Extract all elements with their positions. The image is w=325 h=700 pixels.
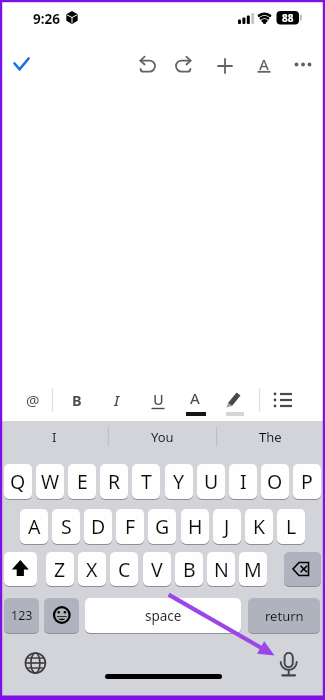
button[interactable]: U	[146, 387, 170, 411]
button[interactable]	[132, 52, 160, 78]
button[interactable]: V	[143, 552, 171, 586]
button[interactable]: W	[36, 464, 64, 499]
button[interactable]: space	[85, 598, 241, 633]
staticText: P	[301, 468, 313, 495]
button[interactable]	[44, 598, 79, 633]
button[interactable]	[4, 552, 37, 586]
staticText: 88	[282, 11, 294, 25]
staticText: return	[265, 607, 304, 625]
button[interactable]: Z	[46, 552, 74, 586]
staticText: I	[114, 390, 120, 410]
button[interactable]: F	[116, 509, 144, 544]
button[interactable]: A	[183, 386, 207, 410]
staticText: J	[224, 513, 230, 540]
button[interactable]: E	[68, 464, 96, 499]
button[interactable]: G	[148, 509, 176, 544]
staticText: X	[86, 556, 98, 583]
button[interactable]: B	[175, 552, 203, 586]
button[interactable]	[8, 52, 36, 78]
staticText: W	[41, 468, 60, 495]
button[interactable]: You	[108, 421, 216, 452]
button[interactable]: I	[0, 421, 108, 452]
staticText: C	[118, 556, 131, 583]
staticText: Y	[173, 468, 185, 495]
staticText: F	[125, 513, 136, 540]
button[interactable]: P	[293, 464, 321, 499]
button[interactable]: D	[84, 509, 112, 544]
button[interactable]: R	[100, 464, 128, 499]
staticText: I	[52, 428, 57, 446]
button[interactable]: A	[250, 52, 278, 76]
button[interactable]: 123	[4, 598, 39, 633]
button[interactable]: C	[110, 552, 138, 586]
button[interactable]: B	[65, 388, 89, 412]
staticText: L	[286, 513, 297, 540]
button[interactable]	[271, 388, 295, 412]
staticText: space	[145, 607, 182, 625]
staticText: Q	[10, 468, 26, 495]
staticText: D	[91, 513, 106, 540]
staticText: M	[244, 556, 262, 583]
button[interactable]: @	[21, 388, 45, 412]
button[interactable]: The	[216, 421, 325, 452]
staticText: G	[155, 513, 170, 540]
staticText: O	[267, 468, 283, 495]
button[interactable]: X	[78, 552, 106, 586]
button[interactable]: N	[207, 552, 235, 586]
button[interactable]: return	[248, 598, 320, 633]
staticText: H	[188, 513, 203, 540]
button[interactable]: I	[105, 388, 129, 412]
button[interactable]: Q	[4, 464, 32, 499]
button[interactable]: M	[239, 552, 267, 586]
staticText: N	[214, 556, 229, 583]
staticText: Z	[54, 556, 66, 583]
staticText: R	[108, 468, 121, 495]
button[interactable]	[289, 52, 317, 78]
staticText: @	[26, 390, 40, 410]
button[interactable]: O	[261, 464, 289, 499]
staticText: I	[240, 468, 247, 495]
button[interactable]: H	[181, 509, 209, 544]
staticText: B	[183, 556, 196, 583]
staticText: V	[151, 556, 163, 583]
button[interactable]: U	[197, 464, 225, 499]
button[interactable]: S	[52, 509, 80, 544]
button[interactable]	[170, 52, 198, 78]
button[interactable]	[221, 388, 245, 412]
button[interactable]	[284, 552, 321, 586]
staticText: E	[77, 468, 88, 495]
staticText: A	[259, 54, 269, 74]
button[interactable]	[211, 52, 239, 78]
staticText: 123	[11, 607, 33, 624]
button[interactable]: A	[20, 509, 48, 544]
button[interactable]: Y	[165, 464, 193, 499]
staticText: T	[141, 468, 152, 495]
staticText: U	[204, 468, 219, 495]
button[interactable]: K	[245, 509, 273, 544]
button[interactable]: I	[229, 464, 257, 499]
staticText: B	[72, 390, 82, 410]
button[interactable]: T	[132, 464, 160, 499]
staticText: A	[190, 388, 200, 408]
button[interactable]: L	[277, 509, 305, 544]
staticText: K	[253, 513, 266, 540]
button[interactable]: J	[213, 509, 241, 544]
staticText: 9:26	[33, 10, 60, 26]
staticText: U	[153, 389, 164, 409]
staticText: You	[151, 428, 174, 446]
staticText: A	[28, 513, 41, 540]
staticText: S	[61, 513, 72, 540]
staticText: The	[259, 428, 282, 446]
